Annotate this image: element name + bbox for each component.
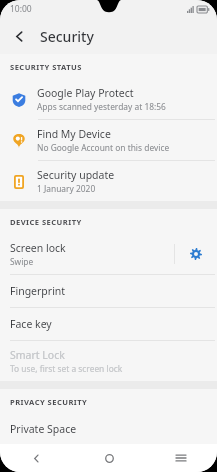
button[interactable]: Face key [0, 308, 217, 340]
button[interactable]: Find My Device [0, 120, 217, 160]
staticText: Fingerprint [10, 284, 66, 298]
button[interactable]: Home [73, 444, 145, 472]
button[interactable]: Google Play Protect [0, 79, 217, 119]
button[interactable]: Back [0, 444, 73, 472]
staticText: Security update [37, 168, 115, 182]
staticText: Google Play Protect [37, 86, 134, 100]
staticText: Find My Device [37, 127, 111, 141]
staticText: 1 January 2020 [37, 183, 96, 194]
button[interactable]: Screen lock [0, 234, 174, 274]
staticText: No Google Account on this device [37, 142, 170, 153]
staticText: Screen lock [10, 241, 66, 255]
button[interactable]: Recent apps [145, 444, 217, 472]
button[interactable]: Fingerprint [0, 275, 217, 307]
staticText: Apps scanned yesterday at 18:56 [37, 101, 166, 112]
button[interactable]: Back [5, 22, 33, 50]
staticText: SECURITY STATUS [10, 62, 82, 72]
staticText: Face key [10, 317, 52, 331]
staticText: Private Space [10, 422, 77, 436]
staticText: PRIVACY SECURITY [10, 397, 88, 407]
button[interactable]: Smart Lock [0, 341, 217, 381]
staticText: To use, first set a screen lock [10, 363, 123, 374]
staticText: DEVICE SECURITY [10, 217, 82, 227]
button[interactable]: Private Space [0, 414, 217, 444]
button[interactable]: Screen lock settings [175, 234, 217, 274]
staticText: Swipe [10, 256, 34, 267]
staticText: Smart Lock [10, 348, 65, 362]
staticText: Security [40, 27, 94, 46]
button[interactable]: Security update [0, 161, 217, 201]
staticText: 10:00 [10, 3, 32, 15]
